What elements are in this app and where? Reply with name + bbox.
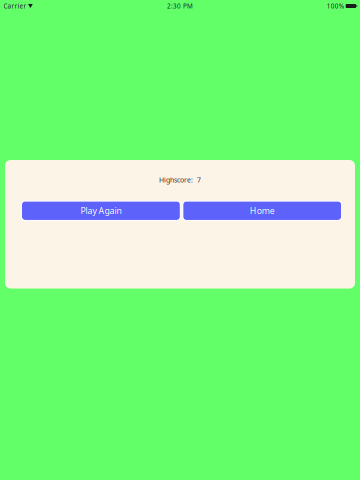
staticText: Home	[250, 205, 275, 217]
staticText: 2:30 PM	[167, 2, 193, 10]
staticText: Carrier	[3, 2, 26, 10]
button[interactable]: Home	[183, 201, 341, 220]
staticText: 100%	[327, 2, 344, 10]
staticText: Play Again	[80, 205, 121, 217]
button[interactable]: Play Again	[22, 201, 180, 220]
staticText: Highscore: 7	[159, 175, 201, 184]
